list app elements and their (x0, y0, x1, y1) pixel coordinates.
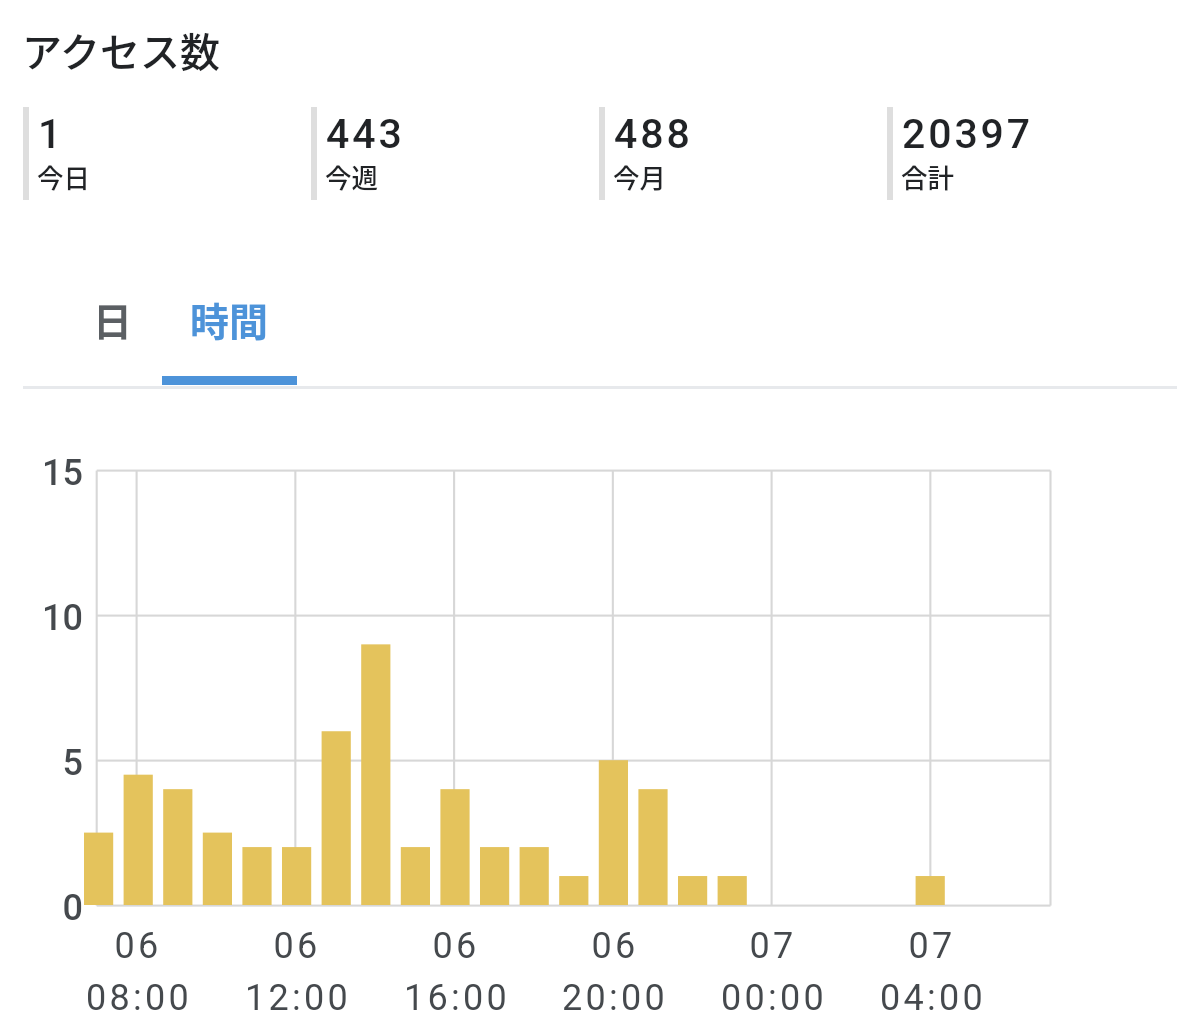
staticText: 今月 (613, 157, 666, 195)
staticText: アクセス数 (22, 21, 220, 79)
staticText: 16:00 (357, 977, 557, 1019)
staticText: 06 (197, 925, 397, 967)
staticText: 15 (0, 452, 83, 494)
staticText: 00:00 (674, 977, 874, 1019)
staticText: 20397 (902, 110, 1034, 158)
staticText: 12:00 (198, 977, 398, 1019)
button[interactable]: 時間 (162, 265, 297, 373)
staticText: 06 (515, 925, 715, 967)
button[interactable]: 日 (23, 265, 162, 373)
staticText: 04:00 (833, 977, 1033, 1019)
staticText: 06 (38, 925, 238, 967)
staticText: 10 (0, 597, 83, 639)
staticText: 5 (0, 742, 83, 784)
staticText: 08:00 (39, 977, 239, 1019)
staticText: 20:00 (515, 977, 715, 1019)
staticText: 488 (614, 110, 693, 158)
staticText: 合計 (901, 157, 954, 195)
staticText: 443 (326, 110, 405, 158)
staticText: 07 (832, 925, 1032, 967)
staticText: 今日 (37, 157, 90, 195)
staticText: 時間 (190, 291, 269, 347)
staticText: 07 (673, 925, 873, 967)
staticText: 06 (356, 925, 556, 967)
staticText: 1 (38, 110, 65, 158)
staticText: 今週 (325, 157, 378, 195)
staticText: 0 (0, 887, 83, 929)
staticText: 日 (93, 291, 133, 347)
